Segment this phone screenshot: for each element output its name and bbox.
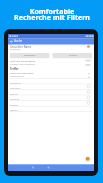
staticText: Kategorie: [10, 81, 21, 84]
button[interactable]: Tab: [72, 164, 94, 171]
button[interactable]: Region: [8, 90, 94, 96]
staticText: Format: [10, 103, 19, 106]
button[interactable]: Tab: [29, 164, 50, 171]
staticText: Ergebnisliste: [10, 75, 24, 78]
staticText: Liste mit Suchtreffern: [10, 59, 36, 62]
button[interactable]: Format: [8, 101, 94, 107]
button[interactable]: FILTERN: [53, 53, 93, 58]
button[interactable]: Quelle: [8, 106, 94, 112]
staticText: Treffer: [10, 67, 19, 71]
button[interactable]: SORTIEREN: [10, 53, 50, 58]
staticText: Quelle: [10, 108, 18, 111]
staticText: SORTIEREN: [24, 54, 36, 57]
staticText: Sortiert nach Relevanz: [10, 62, 36, 65]
staticText: Region: [10, 92, 18, 95]
button[interactable]: Zeitraum: [8, 84, 94, 90]
staticText: Suche: [14, 39, 23, 43]
staticText: Sprache: [10, 97, 20, 100]
button[interactable]: Favorite: [86, 44, 90, 48]
staticText: Komfortable Recherche mit Filtern: [14, 6, 90, 23]
staticText: Filter und Tags aktiv: [10, 71, 34, 74]
button[interactable]: Tab: [8, 164, 29, 171]
button[interactable]: Sprache: [8, 95, 94, 101]
staticText: Zeitraum: [10, 86, 21, 89]
button[interactable]: Add: [85, 156, 90, 161]
button[interactable]: Tab: [50, 164, 72, 171]
button[interactable]: Kategorie: [8, 79, 94, 85]
staticText: Ergebnis: [10, 47, 21, 50]
button[interactable]: Back: [9, 39, 13, 43]
staticText: FILTERN: [69, 54, 78, 57]
staticText: Gesuchter Name: [10, 45, 32, 49]
